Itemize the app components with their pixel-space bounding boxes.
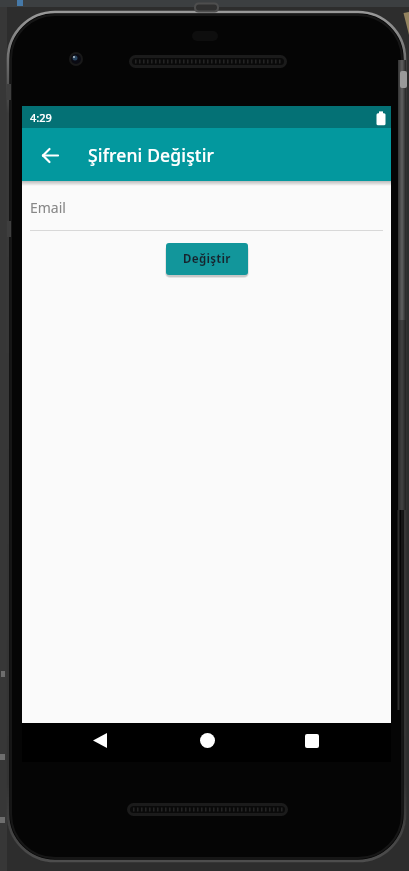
- button[interactable]: Email: [30, 193, 383, 231]
- button[interactable]: Değiştir: [166, 243, 248, 275]
- staticText: Değiştir: [183, 251, 231, 267]
- staticText: 4:29: [30, 110, 52, 125]
- button[interactable]: [297, 723, 327, 758]
- staticText: Email: [30, 198, 66, 217]
- staticText: Şifreni Değiştir: [88, 143, 215, 167]
- button[interactable]: [192, 723, 222, 758]
- button[interactable]: [85, 723, 115, 758]
- button[interactable]: [34, 139, 66, 171]
